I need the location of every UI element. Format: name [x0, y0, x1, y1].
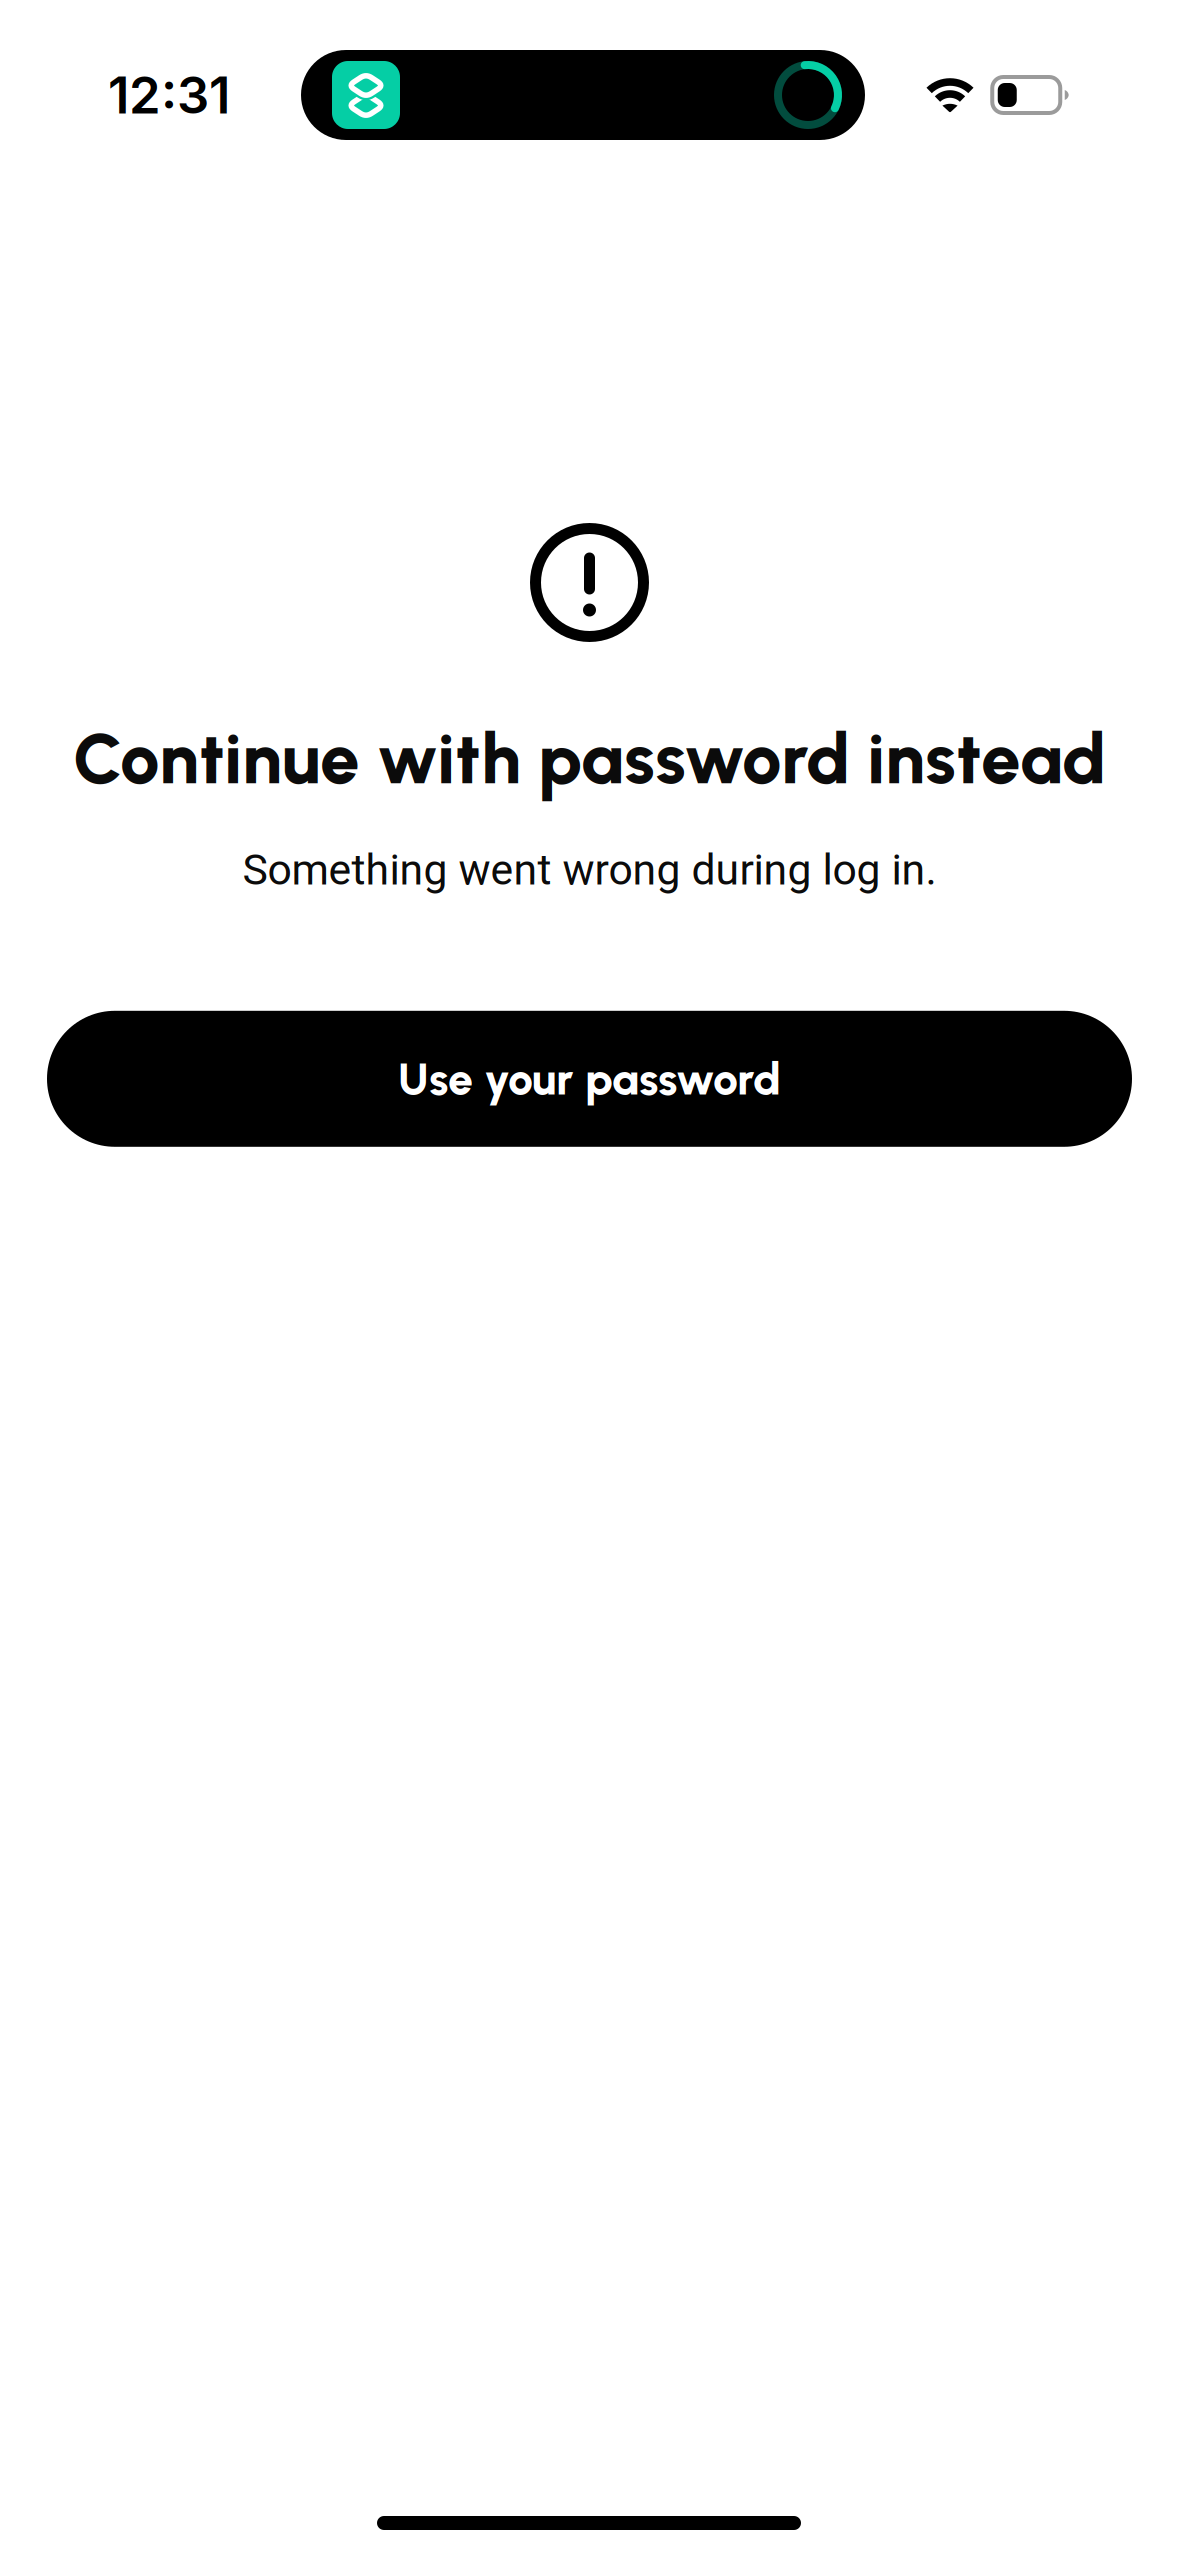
staticText: Something went wrong during log in.: [242, 845, 936, 895]
staticText: Use your password: [398, 1052, 781, 1106]
staticText: Continue with password instead: [73, 716, 1106, 801]
staticText: 12:31: [108, 64, 230, 126]
button[interactable]: Use your password: [47, 1011, 1132, 1147]
